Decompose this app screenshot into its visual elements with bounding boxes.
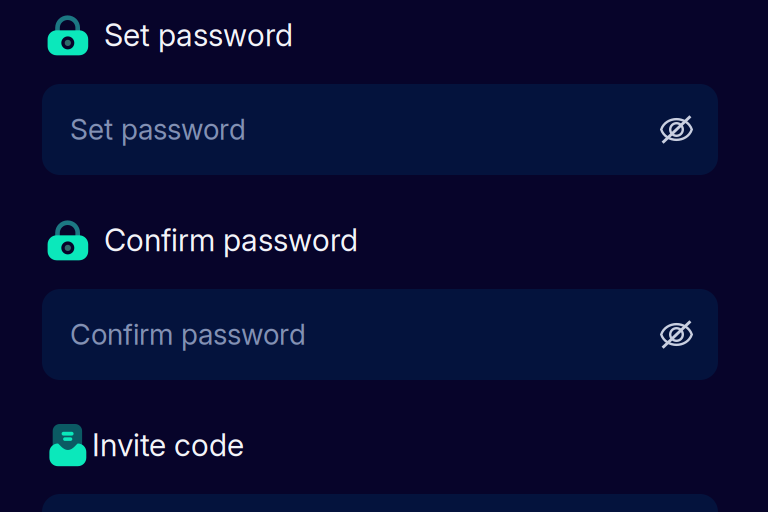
staticText: Invite code: [92, 426, 244, 463]
button[interactable]: Show password: [648, 101, 704, 157]
button[interactable]: Confirm password: [42, 289, 718, 380]
staticText: Confirm password: [104, 221, 358, 258]
staticText: Confirm password: [70, 317, 306, 352]
staticText: Set password: [104, 16, 293, 53]
staticText: Set password: [70, 112, 246, 147]
button[interactable]: Set password: [42, 84, 718, 175]
button[interactable]: Show password: [648, 306, 704, 362]
